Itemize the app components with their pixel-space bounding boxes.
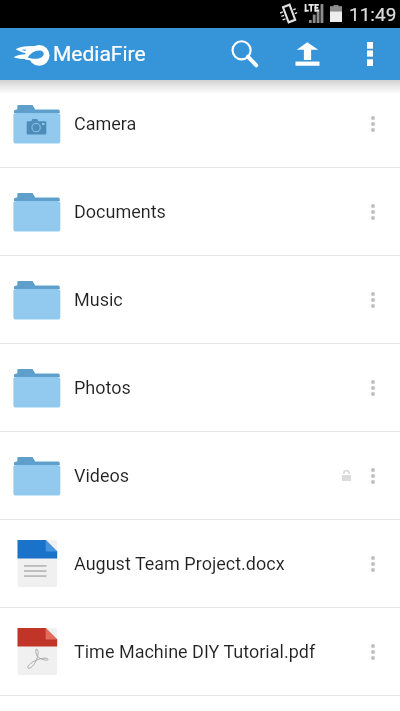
staticText: Camera — [74, 113, 137, 134]
button[interactable]: Search — [221, 28, 269, 80]
staticText: 11:49 — [349, 3, 397, 25]
staticText: Documents — [74, 201, 166, 222]
staticText: Music — [74, 289, 123, 310]
button[interactable]: More options — [352, 256, 400, 343]
button[interactable]: Music — [0, 256, 400, 343]
staticText: August Team Project.docx — [74, 553, 285, 574]
staticText: Videos — [74, 465, 130, 486]
button[interactable]: More options — [352, 344, 400, 431]
button[interactable]: Camera — [0, 80, 400, 167]
button[interactable]: More options — [352, 432, 400, 519]
button[interactable]: Documents — [0, 168, 400, 255]
button[interactable]: More options — [352, 520, 400, 607]
button[interactable]: More options — [352, 608, 400, 695]
button[interactable]: Videos — [0, 432, 400, 519]
button[interactable]: More options — [348, 28, 392, 80]
button[interactable]: Photos — [0, 344, 400, 431]
staticText: MediaFire — [53, 42, 146, 67]
staticText: Photos — [74, 377, 131, 398]
staticText: Time Machine DIY Tutorial.pdf — [74, 641, 316, 662]
button[interactable]: August Team Project.docx — [0, 520, 400, 607]
button[interactable]: More options — [352, 80, 400, 167]
button[interactable]: More options — [352, 168, 400, 255]
button[interactable]: Time Machine DIY Tutorial.pdf — [0, 608, 400, 695]
button[interactable]: Upload — [283, 28, 331, 80]
